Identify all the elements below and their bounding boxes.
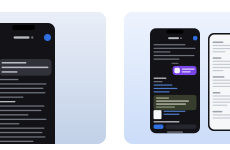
button[interactable] bbox=[0, 33, 55, 42]
button[interactable]: Send bbox=[153, 124, 163, 129]
button[interactable] bbox=[150, 35, 200, 41]
